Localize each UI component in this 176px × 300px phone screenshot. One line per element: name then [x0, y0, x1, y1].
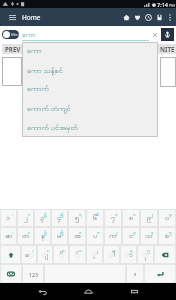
button[interactable]: ကောက် ပင်အမှတ်: [22, 118, 158, 137]
button[interactable]: ၅: [138, 246, 153, 263]
button[interactable]: Back: [30, 283, 54, 300]
button[interactable]: ၊: [1, 228, 16, 244]
button[interactable]: ၁: [123, 210, 139, 226]
button[interactable]: ကော သန့်စင်: [22, 61, 158, 80]
staticText: ်: [75, 250, 80, 261]
button[interactable]: ၏: [87, 210, 103, 226]
button[interactable]: ၂: [87, 246, 102, 263]
button[interactable]: ၄: [121, 246, 136, 263]
staticText: ၁: [97, 229, 100, 236]
staticText: ၄: [151, 229, 154, 236]
staticText: ေ: [25, 250, 34, 261]
staticText: ၉: [147, 213, 152, 224]
button[interactable]: Home: [76, 283, 100, 300]
staticText: ကောက်: [27, 84, 49, 95]
button[interactable]: ကော: [22, 42, 158, 61]
button[interactable]: ၀: [105, 210, 121, 226]
staticText: ၁: [79, 247, 82, 254]
staticText: ကောက် ပင်အမှတ်: [27, 122, 78, 134]
staticText: န: [41, 231, 45, 242]
button[interactable]: Shift: [1, 246, 20, 263]
button[interactable]: ၌: [35, 210, 50, 226]
staticText: ၀: [115, 211, 118, 218]
button[interactable]: ၁: [70, 246, 85, 263]
staticText: ၈: [129, 213, 134, 224]
staticText: မ: [57, 231, 62, 242]
button[interactable]: ၃: [123, 228, 139, 244]
button[interactable]: ။: [38, 246, 52, 263]
staticText: PREV: [5, 45, 21, 53]
staticText: ၃: [40, 213, 45, 224]
staticText: PM: [169, 3, 175, 8]
button[interactable]: Backspace: [155, 246, 175, 263]
staticText: ပ: [93, 231, 98, 242]
staticText: ။: [47, 247, 49, 254]
button[interactable]: 123: [23, 265, 43, 282]
button[interactable]: Emoji keyboard: [1, 265, 21, 282]
button[interactable]: ကောက်: [22, 80, 158, 99]
button[interactable]: ၌: [35, 228, 50, 244]
button[interactable]: Bookmarks: [154, 8, 165, 26]
staticText: ၅: [147, 247, 150, 254]
button[interactable]: Home: [121, 8, 132, 26]
staticText: ၀: [62, 247, 65, 254]
staticText: က: [109, 231, 117, 242]
button[interactable]: Favourites: [132, 8, 143, 26]
staticText: ၊: [12, 229, 13, 236]
staticText: ၁: [6, 213, 11, 224]
staticText: ၃: [113, 247, 116, 254]
button[interactable]: ၀: [69, 228, 85, 244]
button[interactable]: Toggle Myanmar input: [2, 30, 19, 39]
staticText: ၍: [60, 211, 64, 218]
button[interactable]: Voice search: [161, 28, 174, 41]
button[interactable]: ၃: [104, 246, 119, 263]
button[interactable]: Clear text: [149, 29, 161, 41]
button[interactable]: ။: [18, 210, 33, 226]
button[interactable]: ၂: [141, 210, 157, 226]
button[interactable]: ။: [127, 265, 143, 282]
staticText: Mm: [11, 32, 19, 38]
button[interactable]: ၄: [141, 228, 157, 244]
staticText: ၃: [169, 211, 172, 218]
staticText: ၀: [165, 213, 170, 224]
button[interactable]: ၀: [54, 246, 68, 263]
staticText: 123: [29, 271, 38, 278]
staticText: ာ: [125, 250, 133, 261]
staticText: ။: [28, 229, 30, 236]
button[interactable]: ၁: [87, 228, 103, 244]
button[interactable]: PREV: [2, 44, 23, 54]
staticText: ိ: [59, 250, 64, 261]
button[interactable]: Recent apps: [122, 283, 146, 300]
staticText: ကော: [27, 46, 42, 57]
button[interactable]: ၍: [52, 210, 67, 226]
staticText: အ: [74, 231, 81, 242]
staticText: Home: [22, 13, 41, 22]
button[interactable]: More options: [165, 8, 175, 26]
staticText: ၅: [75, 213, 80, 224]
staticText: ၊: [32, 247, 33, 254]
button[interactable]: ၎: [69, 210, 85, 226]
button[interactable]: ၍: [52, 228, 67, 244]
staticText: ၄: [130, 247, 133, 254]
button[interactable]: ကောက် တံကျင်: [22, 99, 158, 118]
staticText: ၏: [95, 211, 100, 218]
staticText: ၄: [57, 213, 62, 224]
staticText: ၃: [133, 229, 136, 236]
button[interactable]: Open navigation drawer: [6, 11, 18, 23]
button[interactable]: NITE: [158, 44, 176, 54]
staticText: 7:14: [157, 1, 168, 8]
button[interactable]: ၃: [159, 210, 175, 226]
button[interactable]: ၅: [159, 228, 175, 244]
button[interactable]: Enter: [145, 265, 175, 282]
staticText: ၌: [44, 229, 47, 236]
button[interactable]: ၊: [22, 246, 36, 263]
button[interactable]: History: [143, 8, 154, 26]
button[interactable]: ။: [18, 228, 33, 244]
staticText: ။: [28, 211, 30, 218]
staticText: ၍: [60, 229, 64, 236]
staticText: ၂: [151, 211, 154, 218]
button[interactable]: ၂: [105, 228, 121, 244]
staticText: ၆: [93, 213, 98, 224]
button[interactable]: ၊: [1, 210, 16, 226]
